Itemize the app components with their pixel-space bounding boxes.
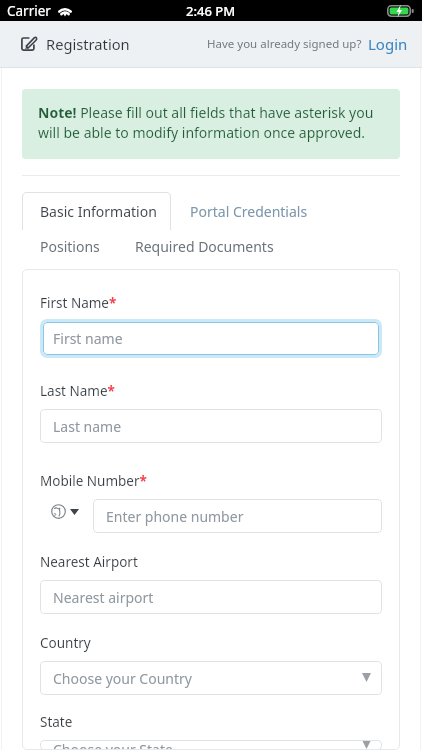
staticText: Carrier bbox=[7, 2, 51, 20]
button[interactable]: Choose your Country bbox=[40, 661, 382, 695]
staticText: Last name bbox=[53, 417, 122, 436]
button[interactable]: Nearest airport bbox=[40, 580, 382, 614]
staticText: Choose your Country bbox=[53, 669, 192, 688]
button[interactable]: Positions bbox=[22, 230, 118, 262]
staticText: Nearest airport bbox=[53, 588, 154, 607]
staticText: State bbox=[40, 713, 73, 731]
button[interactable]: Registration bbox=[21, 34, 130, 54]
staticText: Required Documents bbox=[135, 237, 274, 256]
staticText: Enter phone number bbox=[106, 507, 244, 526]
staticText: First Name* bbox=[40, 294, 117, 312]
staticText: Mobile Number* bbox=[40, 472, 147, 490]
button[interactable]: First name bbox=[43, 322, 379, 355]
staticText: 2:46 PM bbox=[186, 2, 236, 20]
staticText: Last Name* bbox=[40, 382, 115, 400]
button[interactable]: Basic Information bbox=[22, 192, 171, 230]
button[interactable]: Required Documents bbox=[118, 230, 291, 262]
staticText: Positions bbox=[40, 237, 100, 256]
staticText: First name bbox=[53, 329, 123, 348]
button[interactable]: Login bbox=[368, 34, 408, 54]
staticText: Portal Credentials bbox=[190, 202, 308, 221]
staticText: Note! Please fill out all fields that ha… bbox=[38, 103, 374, 143]
staticText: Choose your State bbox=[53, 740, 173, 750]
staticText: Login bbox=[368, 34, 408, 54]
button[interactable]: Portal Credentials bbox=[171, 192, 325, 230]
staticText: Country bbox=[40, 634, 91, 652]
button[interactable]: Last name bbox=[40, 409, 382, 443]
other: Registration bbox=[21, 35, 37, 51]
staticText: Registration bbox=[46, 34, 130, 54]
staticText: Have you already signed up? bbox=[207, 36, 362, 52]
button[interactable]: Select country code bbox=[40, 509, 93, 524]
button[interactable]: Enter phone number bbox=[93, 499, 382, 533]
staticText: Nearest Airport bbox=[40, 553, 138, 571]
staticText: Basic Information bbox=[40, 202, 157, 221]
button[interactable]: Choose your State bbox=[40, 740, 382, 750]
